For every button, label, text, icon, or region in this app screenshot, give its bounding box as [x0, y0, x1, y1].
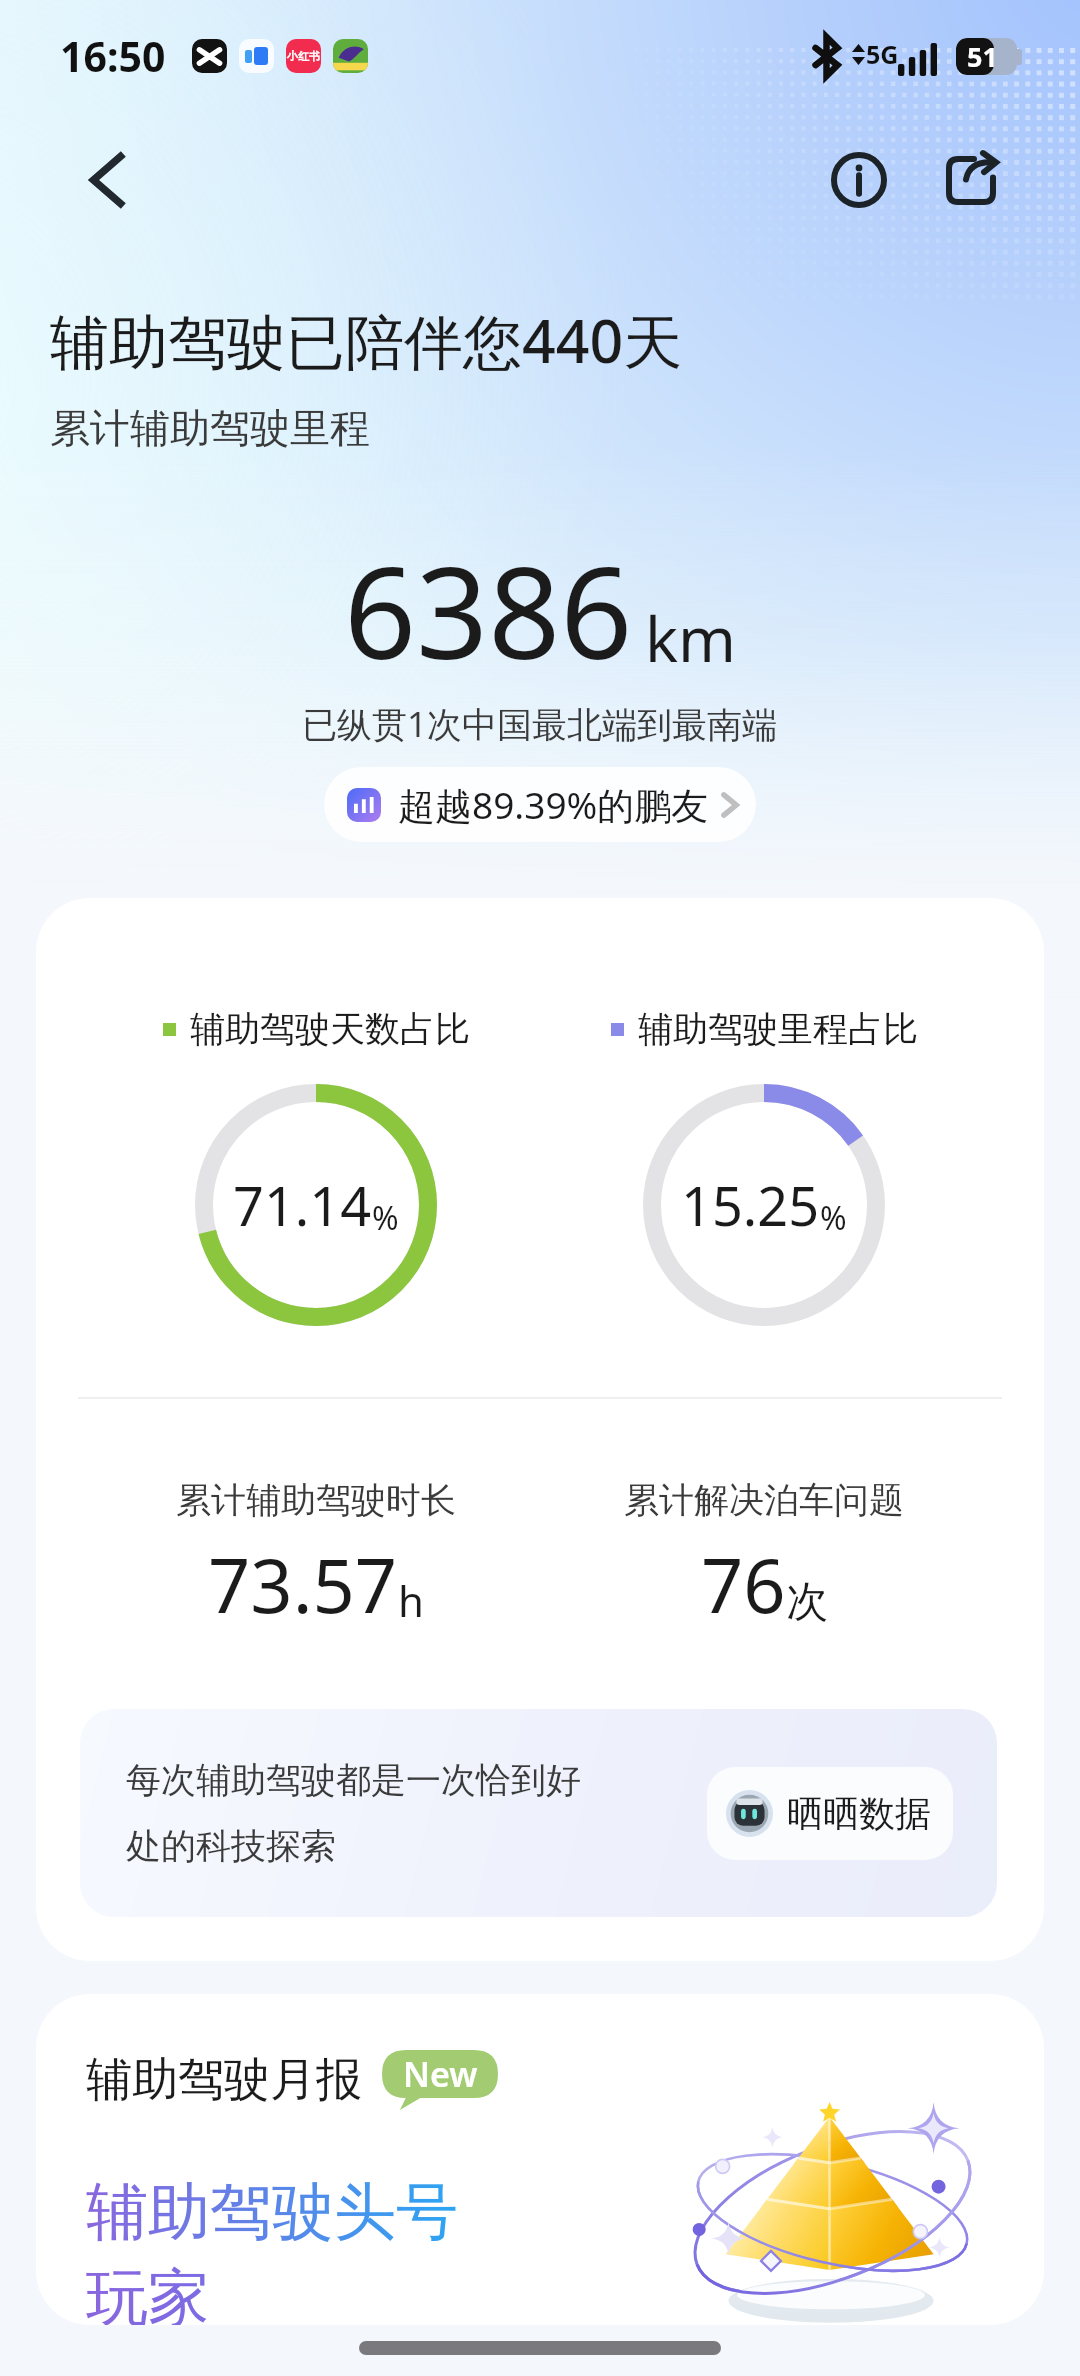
button[interactable]: Share — [915, 124, 1027, 236]
staticText: 76 — [701, 1534, 786, 1635]
staticText: km — [645, 596, 737, 680]
button[interactable]: 晒晒数据 — [707, 1767, 953, 1860]
staticText: New — [403, 2051, 478, 2097]
staticText: 15.25 — [681, 1168, 820, 1242]
button[interactable]: 超越89.39%的鹏友 — [324, 767, 756, 842]
staticText: 超越89.39%的鹏友 — [398, 779, 709, 830]
staticText: 16:50 — [60, 28, 166, 84]
staticText: 晒晒数据 — [787, 1791, 931, 1836]
staticText: 累计辅助驾驶里程 — [50, 403, 370, 453]
staticText: 73.57 — [208, 1534, 398, 1635]
staticText: 71.14 — [233, 1168, 372, 1242]
staticText: 已纵贯1次中国最北端到最南端 — [302, 700, 778, 748]
staticText: 6386 — [344, 524, 633, 696]
button[interactable]: Info — [803, 124, 915, 236]
button[interactable]: 辅助驾驶月报 — [36, 1994, 1044, 2325]
staticText: 次 — [786, 1576, 828, 1629]
staticText: 51 — [967, 38, 998, 75]
staticText: 小红书 — [287, 49, 320, 63]
staticText: 累计辅助驾驶时长 — [176, 1478, 456, 1522]
staticText: % — [372, 1196, 399, 1240]
staticText: 5G — [866, 37, 899, 71]
staticText: 每次辅助驾驶都是一次恰到好 — [126, 1758, 581, 1802]
staticText: 处的科技探索 — [126, 1824, 336, 1868]
staticText: h — [398, 1572, 424, 1629]
staticText: 辅助驾驶天数占比 — [190, 1007, 470, 1051]
staticText: 玩家 — [86, 2259, 210, 2325]
staticText: % — [820, 1196, 847, 1240]
button[interactable]: Back — [48, 121, 166, 239]
staticText: 辅助驾驶已陪伴您440天 — [50, 300, 683, 381]
staticText: 辅助驾驶头号 — [86, 2173, 458, 2251]
staticText: 辅助驾驶月报 — [86, 2051, 362, 2109]
staticText: 辅助驾驶里程占比 — [638, 1007, 918, 1051]
staticText: 累计解决泊车问题 — [624, 1478, 904, 1522]
